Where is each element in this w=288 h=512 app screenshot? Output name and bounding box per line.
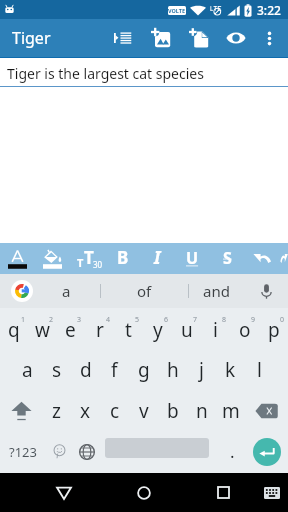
button[interactable]: k	[216, 349, 245, 390]
button[interactable]: More options	[254, 19, 285, 57]
button[interactable]: f	[100, 349, 129, 390]
button[interactable]: .	[219, 431, 245, 472]
button[interactable]: ?123	[0, 431, 46, 472]
button[interactable]: l	[245, 349, 274, 390]
staticText: t	[125, 317, 132, 343]
button[interactable]: and	[189, 274, 244, 308]
staticText: i	[213, 317, 218, 343]
staticText: 30	[93, 259, 103, 270]
staticText: p	[268, 317, 280, 343]
button[interactable]: 5	[114, 308, 143, 349]
staticText: k	[225, 357, 236, 383]
staticText: T	[84, 246, 94, 269]
staticText: VOLTE	[168, 7, 186, 14]
button[interactable]: Enter	[245, 431, 288, 472]
button[interactable]: h	[158, 349, 187, 390]
staticText: z	[52, 398, 61, 424]
staticText: S	[223, 247, 232, 269]
staticText: s	[52, 357, 62, 383]
button[interactable]: Strikethrough	[210, 243, 245, 274]
staticText: 7	[193, 315, 198, 325]
staticText: q	[8, 317, 20, 343]
button[interactable]: v	[129, 390, 158, 431]
button[interactable]: Switch keyboard	[256, 477, 287, 508]
button[interactable]: Change keyboard language	[72, 431, 102, 472]
staticText: x	[80, 398, 91, 424]
staticText: h	[167, 357, 179, 383]
staticText: 9	[251, 315, 256, 325]
staticText: ?123	[9, 443, 37, 461]
staticText: 6	[164, 315, 169, 325]
staticText: I	[154, 246, 161, 269]
staticText: 8	[222, 315, 227, 325]
button[interactable]: b	[158, 390, 187, 431]
button[interactable]: Redo	[280, 243, 288, 274]
button[interactable]: n	[187, 390, 216, 431]
button[interactable]: of	[101, 274, 188, 308]
staticText: B	[117, 246, 129, 269]
staticText: Tiger is the largest cat species	[7, 64, 204, 83]
button[interactable]: Insert image	[142, 19, 180, 57]
staticText: 0	[280, 315, 285, 325]
button[interactable]: Underline	[175, 243, 210, 274]
staticText: e	[65, 317, 76, 343]
staticText: a	[22, 357, 33, 383]
button[interactable]: c	[100, 390, 129, 431]
button[interactable]: Insert file	[180, 19, 218, 57]
button[interactable]: 1	[0, 308, 28, 349]
button[interactable]: 4	[85, 308, 114, 349]
button[interactable]: Preview	[218, 19, 254, 57]
staticText: 3:22	[257, 2, 281, 18]
button[interactable]: 7	[172, 308, 201, 349]
staticText: y	[153, 317, 163, 343]
button[interactable]: 6	[143, 308, 172, 349]
staticText: 2	[49, 315, 54, 325]
staticText: j	[199, 357, 204, 383]
staticText: d	[80, 357, 92, 383]
button[interactable]: 9	[230, 308, 259, 349]
staticText: 3	[77, 315, 82, 325]
staticText: v	[139, 398, 149, 424]
button[interactable]: m	[216, 390, 245, 431]
button[interactable]: 0	[259, 308, 288, 349]
staticText: of	[137, 281, 152, 301]
button[interactable]: a	[44, 274, 100, 308]
button[interactable]: Back	[46, 475, 81, 510]
button[interactable]: a	[13, 349, 42, 390]
button[interactable]: Google search	[0, 274, 44, 308]
button[interactable]: z	[42, 390, 71, 431]
button[interactable]: d	[71, 349, 100, 390]
button[interactable]: Italic	[140, 243, 175, 274]
button[interactable]: g	[129, 349, 158, 390]
button[interactable]: 2	[28, 308, 56, 349]
staticText: r	[96, 317, 104, 343]
button[interactable]: Voice input	[244, 274, 288, 308]
staticText: 5	[135, 315, 140, 325]
button[interactable]: Bold	[105, 243, 140, 274]
staticText: and	[203, 281, 230, 301]
button[interactable]: Shift	[0, 390, 42, 431]
staticText: m	[222, 398, 240, 424]
staticText: 4	[106, 315, 111, 325]
staticText: l	[257, 357, 262, 383]
button[interactable]: 3	[56, 308, 85, 349]
button[interactable]: Font size	[70, 243, 105, 274]
staticText: f	[111, 357, 118, 383]
staticText: u	[181, 317, 193, 343]
button[interactable]: Formatting list	[104, 19, 142, 57]
button[interactable]: Emoji	[46, 431, 72, 472]
staticText: n	[196, 398, 208, 424]
staticText: a	[62, 281, 71, 301]
button[interactable]: Text colour	[0, 243, 35, 274]
button[interactable]: Home	[126, 475, 161, 510]
button[interactable]: s	[42, 349, 71, 390]
button[interactable]: x	[71, 390, 100, 431]
button[interactable]: Undo	[245, 243, 280, 274]
button[interactable]: Recent apps	[206, 475, 241, 510]
button[interactable]: Highlight colour	[35, 243, 70, 274]
button[interactable]: j	[187, 349, 216, 390]
button[interactable]: Backspace	[245, 390, 288, 431]
staticText: .	[230, 440, 235, 463]
button[interactable]: 8	[201, 308, 230, 349]
